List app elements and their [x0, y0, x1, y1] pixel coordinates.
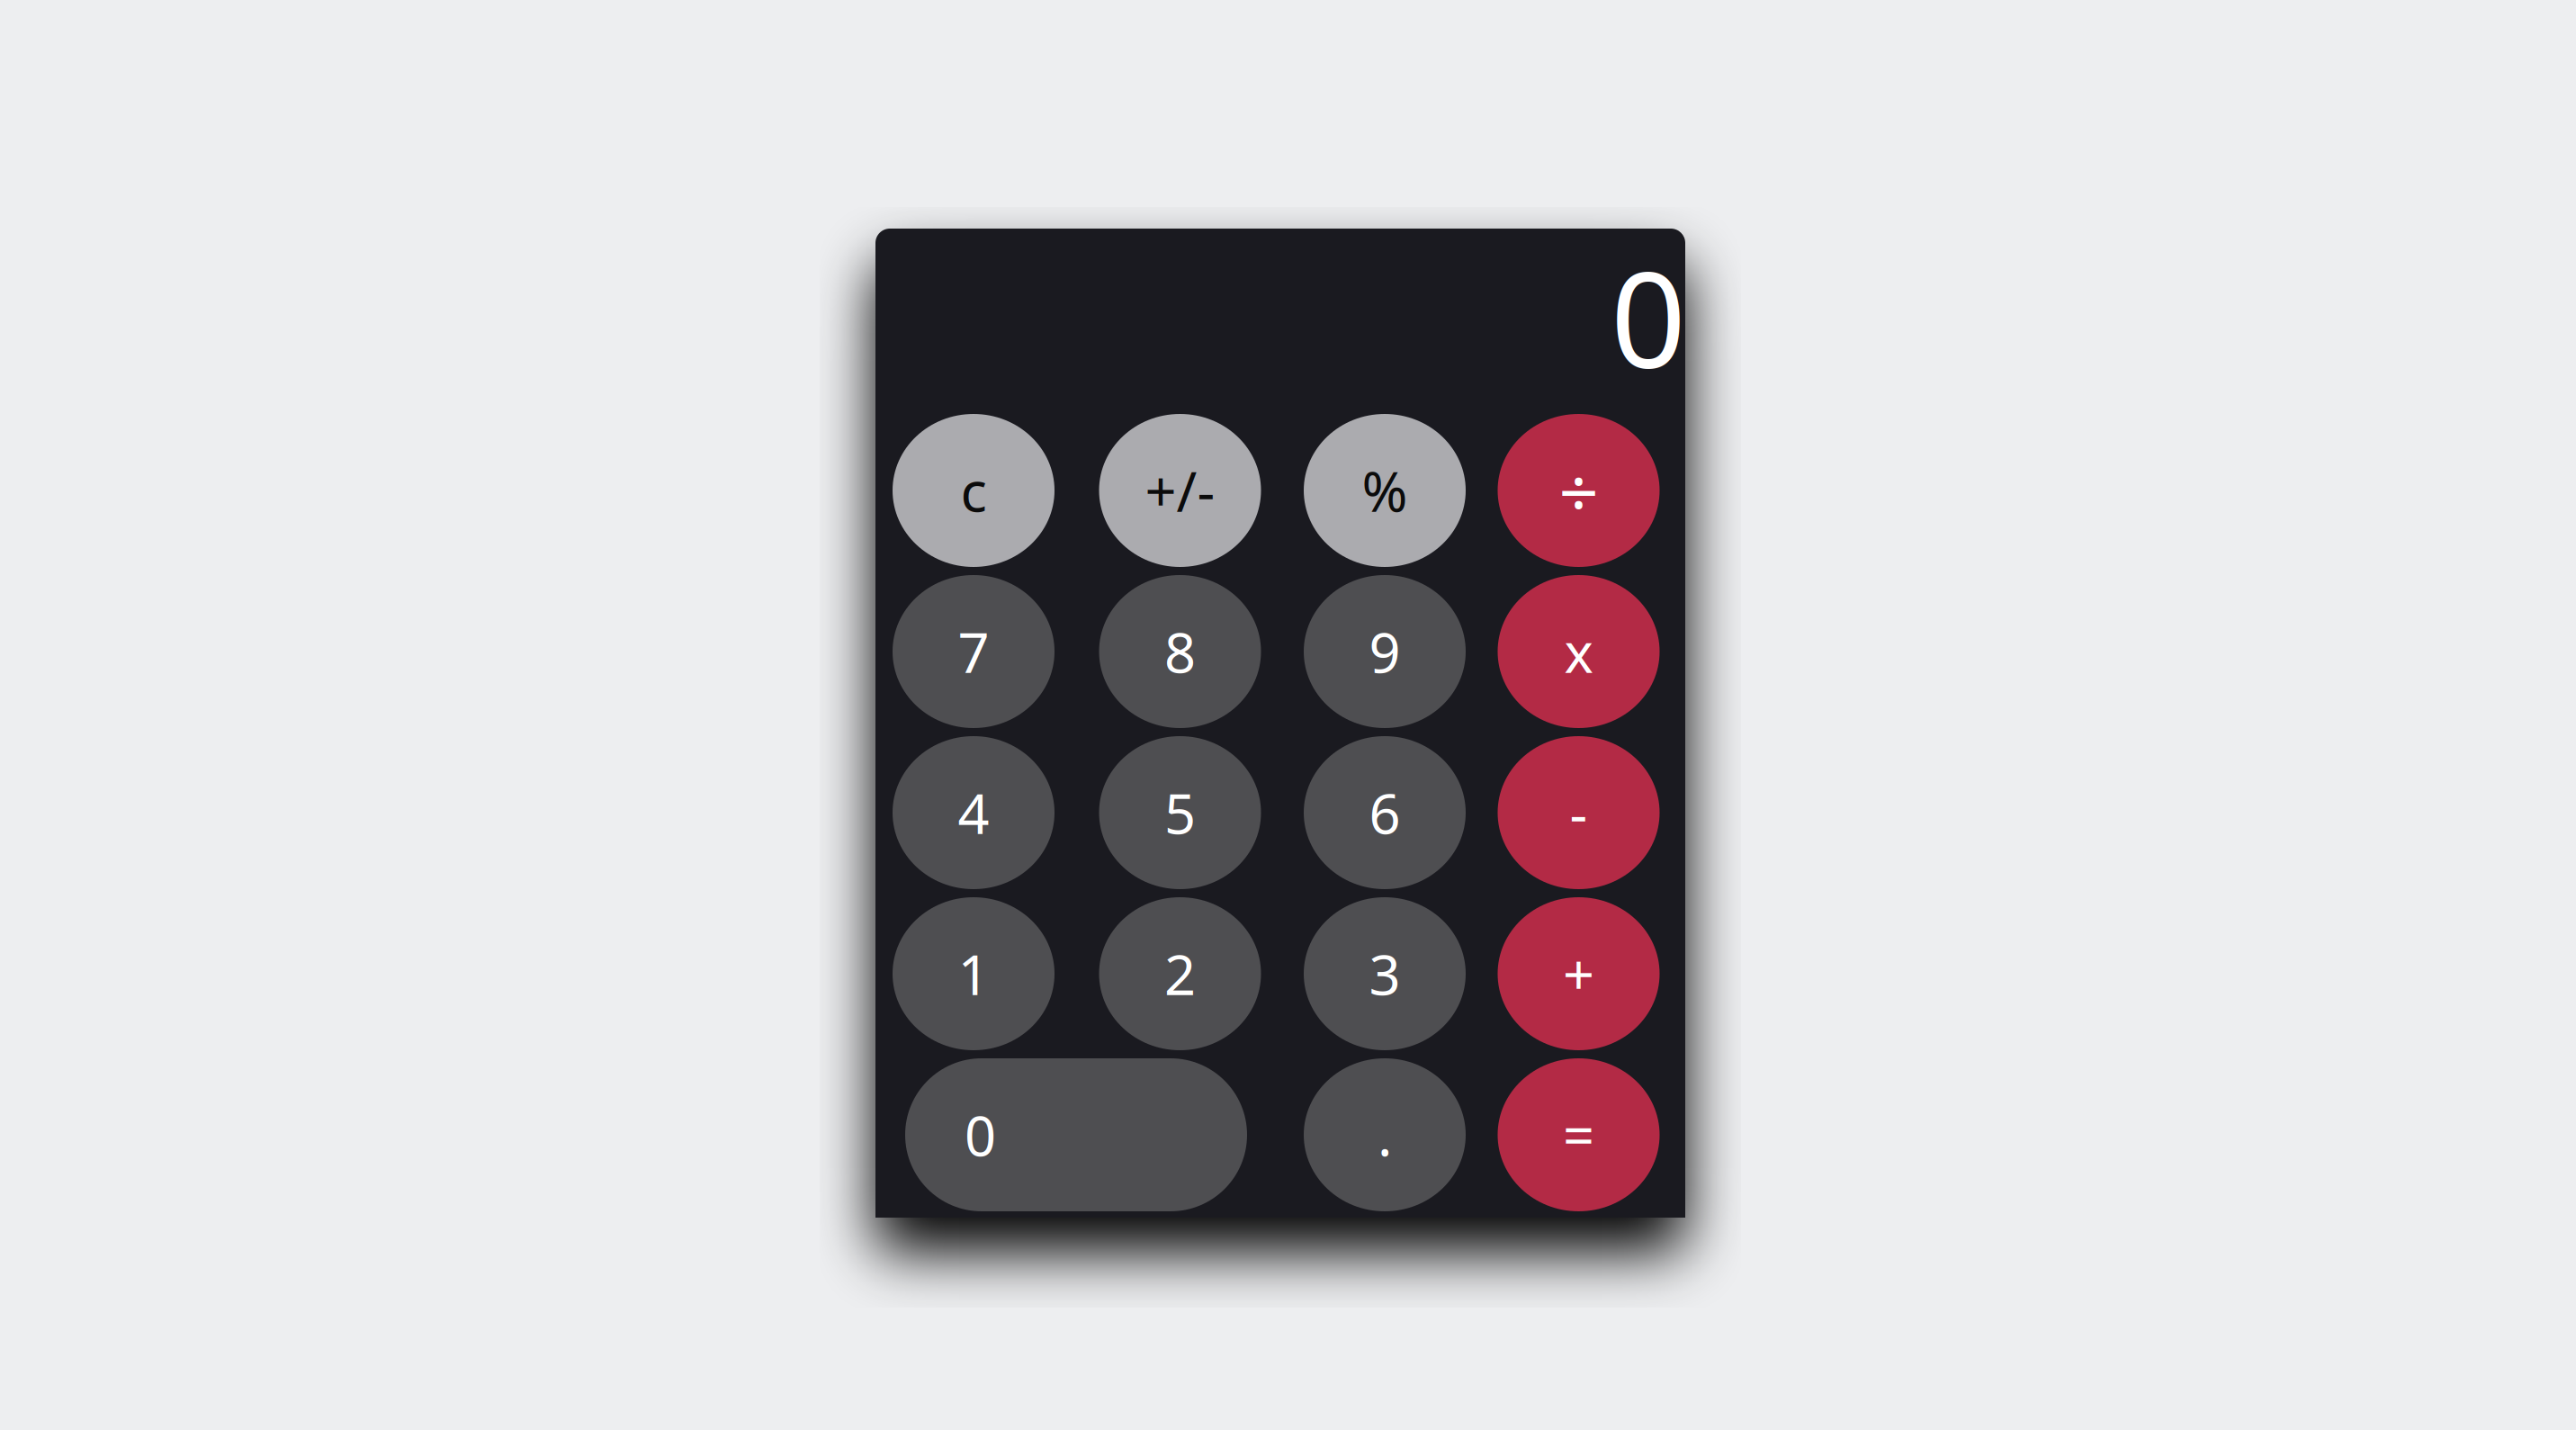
staticText: .: [1378, 1098, 1392, 1171]
staticText: 4: [958, 776, 989, 849]
button[interactable]: Two: [1099, 897, 1261, 1050]
button[interactable]: Plus minus: [1099, 414, 1261, 567]
staticText: +: [1563, 937, 1594, 1010]
staticText: 5: [1164, 776, 1196, 849]
staticText: 6: [1369, 776, 1400, 849]
button[interactable]: One: [893, 897, 1055, 1050]
button[interactable]: Six: [1304, 736, 1466, 889]
button[interactable]: Subtract: [1498, 736, 1660, 889]
staticText: ÷: [1559, 444, 1598, 537]
button[interactable]: Multiply: [1498, 575, 1660, 728]
staticText: 0: [965, 1098, 996, 1171]
staticText: c: [960, 454, 987, 527]
button[interactable]: Add: [1498, 897, 1660, 1050]
staticText: %: [1362, 454, 1408, 527]
button[interactable]: Percent: [1304, 414, 1466, 567]
staticText: 8: [1164, 615, 1196, 688]
staticText: =: [1563, 1098, 1594, 1171]
button[interactable]: Clear: [893, 414, 1055, 567]
button[interactable]: Divide: [1498, 414, 1660, 567]
staticText: 0: [1611, 229, 1686, 404]
staticText: x: [1564, 615, 1593, 688]
button[interactable]: Zero: [905, 1058, 1247, 1211]
button[interactable]: Nine: [1304, 575, 1466, 728]
button[interactable]: Three: [1304, 897, 1466, 1050]
button[interactable]: Equals: [1498, 1058, 1660, 1211]
staticText: 9: [1369, 615, 1400, 688]
button[interactable]: Decimal point: [1304, 1058, 1466, 1211]
staticText: 3: [1369, 937, 1400, 1010]
staticText: -: [1570, 776, 1588, 849]
button[interactable]: Four: [893, 736, 1055, 889]
button[interactable]: Five: [1099, 736, 1261, 889]
staticText: 7: [958, 615, 989, 688]
staticText: 1: [958, 937, 989, 1010]
staticText: +/-: [1145, 454, 1215, 527]
button[interactable]: Eight: [1099, 575, 1261, 728]
button[interactable]: Seven: [893, 575, 1055, 728]
staticText: 2: [1164, 937, 1196, 1010]
